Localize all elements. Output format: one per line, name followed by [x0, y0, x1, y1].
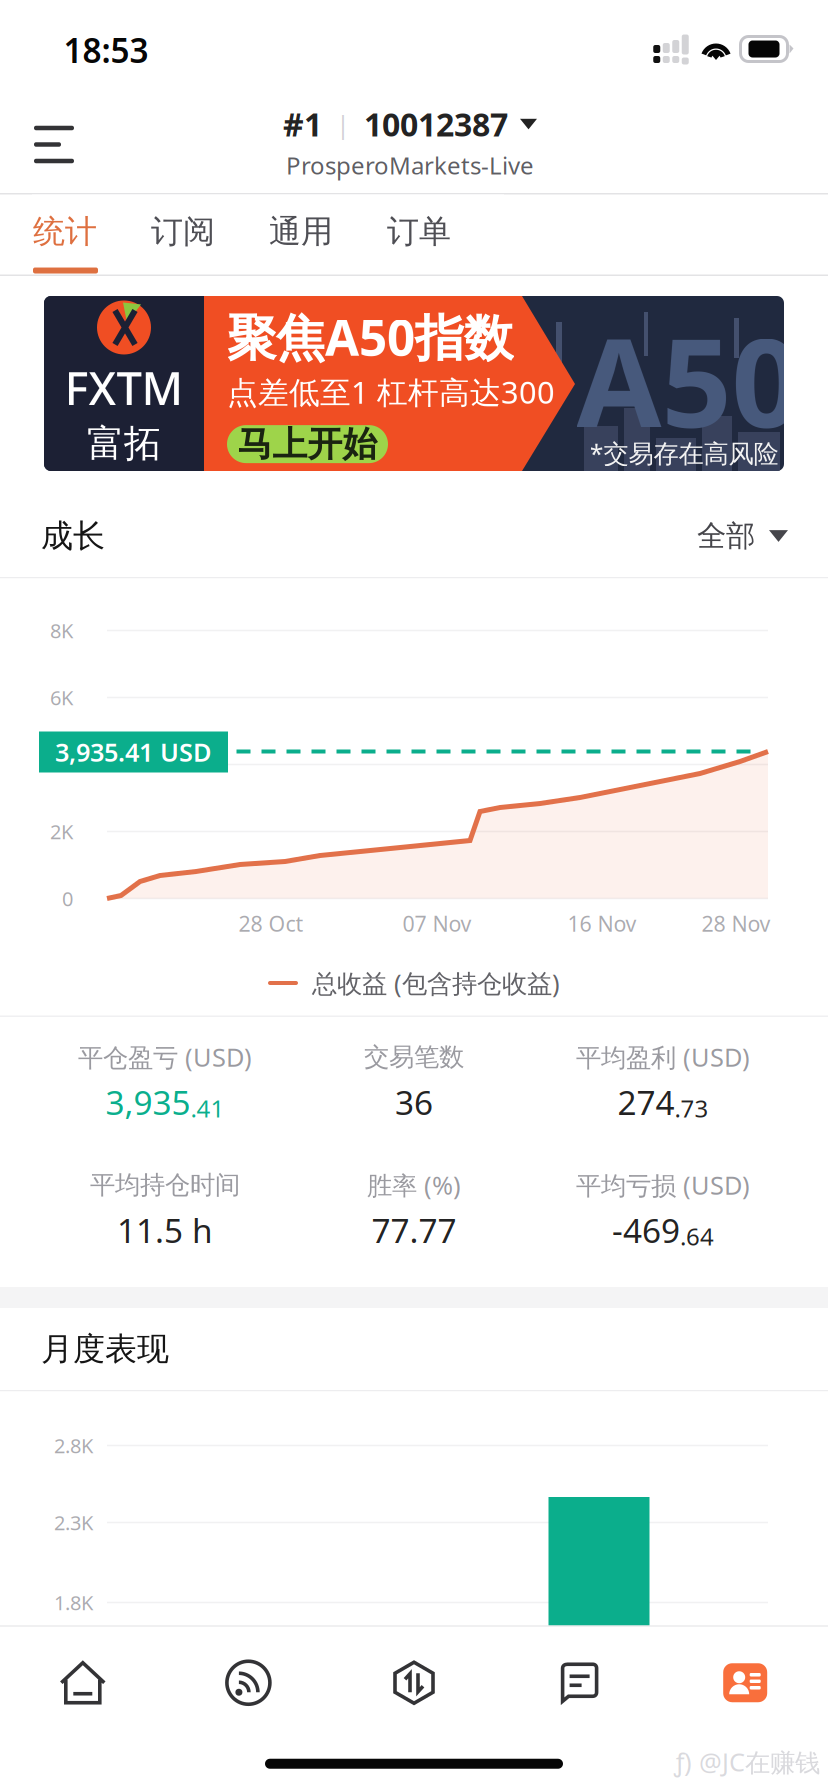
button[interactable]: 统计 [32, 194, 150, 274]
staticText: .64 [680, 1220, 714, 1252]
staticText: 16 Nov [567, 909, 636, 938]
staticText: ProsperoMarkets-Live [286, 149, 534, 181]
staticText: 订单 [387, 212, 451, 251]
staticText: 月度表现 [41, 1329, 169, 1369]
staticText: 3,935.41 USD [55, 735, 212, 769]
staticText: 统计 [33, 212, 97, 251]
staticText: 07 Nov [402, 909, 471, 938]
button[interactable]: 订单 [386, 194, 504, 274]
staticText: 通用 [269, 212, 333, 251]
staticText: 交易笔数 [364, 1041, 464, 1072]
staticText: 点差低至1 杠杆高达300 [227, 371, 555, 412]
staticText: 28 Nov [701, 909, 770, 938]
staticText: 成长 [41, 516, 105, 556]
staticText: 3,935 [105, 1080, 190, 1124]
staticText: 28 Oct [238, 909, 303, 938]
button[interactable]: Trade [331, 1627, 497, 1739]
staticText: 36 [395, 1080, 433, 1124]
staticText: .73 [674, 1092, 708, 1124]
button[interactable]: 通用 [268, 194, 386, 274]
button[interactable]: 订阅 [150, 194, 268, 274]
staticText: 18:53 [63, 28, 148, 72]
staticText: 8K [50, 617, 73, 644]
staticText: 富拓 [87, 421, 161, 467]
button[interactable]: Chat [497, 1627, 662, 1739]
staticText: 6K [50, 684, 73, 711]
staticText: | [322, 107, 364, 141]
button[interactable]: Accounts [662, 1627, 828, 1739]
staticText: 订阅 [151, 212, 215, 251]
staticText: 总收益 (包含持仓收益) [312, 966, 560, 1000]
staticText: 聚焦A50指数 [227, 304, 513, 369]
staticText: 平均盈利 (USD) [576, 1040, 750, 1074]
staticText: 马上开始 [237, 423, 377, 465]
button[interactable]: 全部 [697, 518, 788, 554]
staticText: 平均持仓时间 [90, 1169, 240, 1200]
staticText: A50 [576, 299, 801, 461]
button[interactable]: Menu [0, 96, 130, 193]
staticText: FXTM [64, 357, 183, 418]
staticText: ƒ) @JC在赚钱 [674, 1745, 820, 1779]
staticText: 2.3K [54, 1509, 93, 1536]
button[interactable]: Quotes [166, 1627, 331, 1739]
staticText: 1.8K [54, 1589, 93, 1616]
staticText: 全部 [697, 518, 755, 554]
staticText: 平仓盈亏 (USD) [78, 1040, 252, 1074]
staticText: *交易存在高风险 [589, 436, 778, 470]
staticText: 10012387 [364, 103, 508, 145]
staticText: 0 [62, 885, 73, 912]
staticText: #1 [283, 103, 322, 145]
button[interactable]: #1 [283, 103, 537, 181]
staticText: 2.8K [54, 1432, 93, 1459]
staticText: -469 [612, 1208, 680, 1252]
button[interactable]: FXTM advertisement [44, 296, 784, 471]
staticText: 11.5 h [117, 1208, 213, 1252]
staticText: 274 [617, 1080, 674, 1124]
staticText: .41 [190, 1092, 224, 1124]
staticText: 胜率 (%) [367, 1168, 461, 1202]
button[interactable]: Home [0, 1627, 166, 1739]
staticText: 2K [50, 818, 73, 845]
staticText: 平均亏损 (USD) [576, 1168, 750, 1202]
staticText: 77.77 [371, 1208, 456, 1252]
